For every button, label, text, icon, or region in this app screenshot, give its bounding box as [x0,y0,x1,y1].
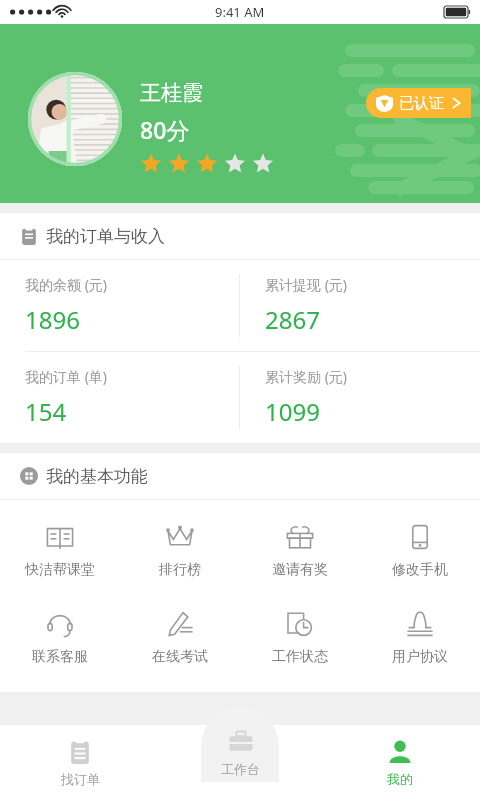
staticText: 2867 [265,303,320,336]
button[interactable]: 联系客服 [0,605,120,670]
button[interactable]: 在线考试 [120,605,240,670]
button[interactable]: 我的订单 (单) [0,352,239,443]
button[interactable]: 已认证 [366,88,471,118]
staticText: 快洁帮课堂 [25,561,95,579]
button[interactable]: 用户协议 [360,605,480,670]
staticText: 我的基本功能 [46,466,148,487]
button[interactable]: 累计提现 (元) [240,260,480,351]
staticText: 我的余额 (元) [25,275,108,294]
button[interactable]: 快洁帮课堂 [0,518,120,583]
staticText: 我的订单 (单) [25,367,108,386]
staticText: 在线考试 [152,648,208,666]
staticText: 找订单 [61,771,100,787]
staticText: 联系客服 [32,648,88,666]
staticText: 累计奖励 (元) [265,367,348,386]
staticText: 修改手机 [392,561,448,579]
button[interactable]: 修改手机 [360,518,480,583]
button[interactable]: 邀请有奖 [240,518,360,583]
staticText: 排行榜 [159,561,201,579]
button[interactable]: 找订单 [0,725,160,800]
staticText: 工作状态 [272,648,328,666]
staticText: 工作台 [221,761,260,777]
staticText: 已认证 [399,94,444,113]
staticText: 154 [25,395,67,428]
staticText: 用户协议 [392,648,448,666]
staticText: 1099 [265,395,320,428]
staticText: 80分 [140,114,190,145]
staticText: 王桂霞 [140,80,203,106]
button[interactable]: 累计奖励 (元) [240,352,480,443]
staticText: 我的订单与收入 [46,226,165,247]
button[interactable]: 工作状态 [240,605,360,670]
staticText: 我的 [387,771,413,787]
button[interactable]: 工作台 [201,707,279,782]
staticText: 1896 [25,303,80,336]
staticText: 9:41 AM [215,3,265,21]
button[interactable]: 我的 [320,725,480,800]
button[interactable]: 我的余额 (元) [0,260,239,351]
staticText: 邀请有奖 [272,561,328,579]
staticText: 累计提现 (元) [265,275,348,294]
button[interactable]: 排行榜 [120,518,240,583]
